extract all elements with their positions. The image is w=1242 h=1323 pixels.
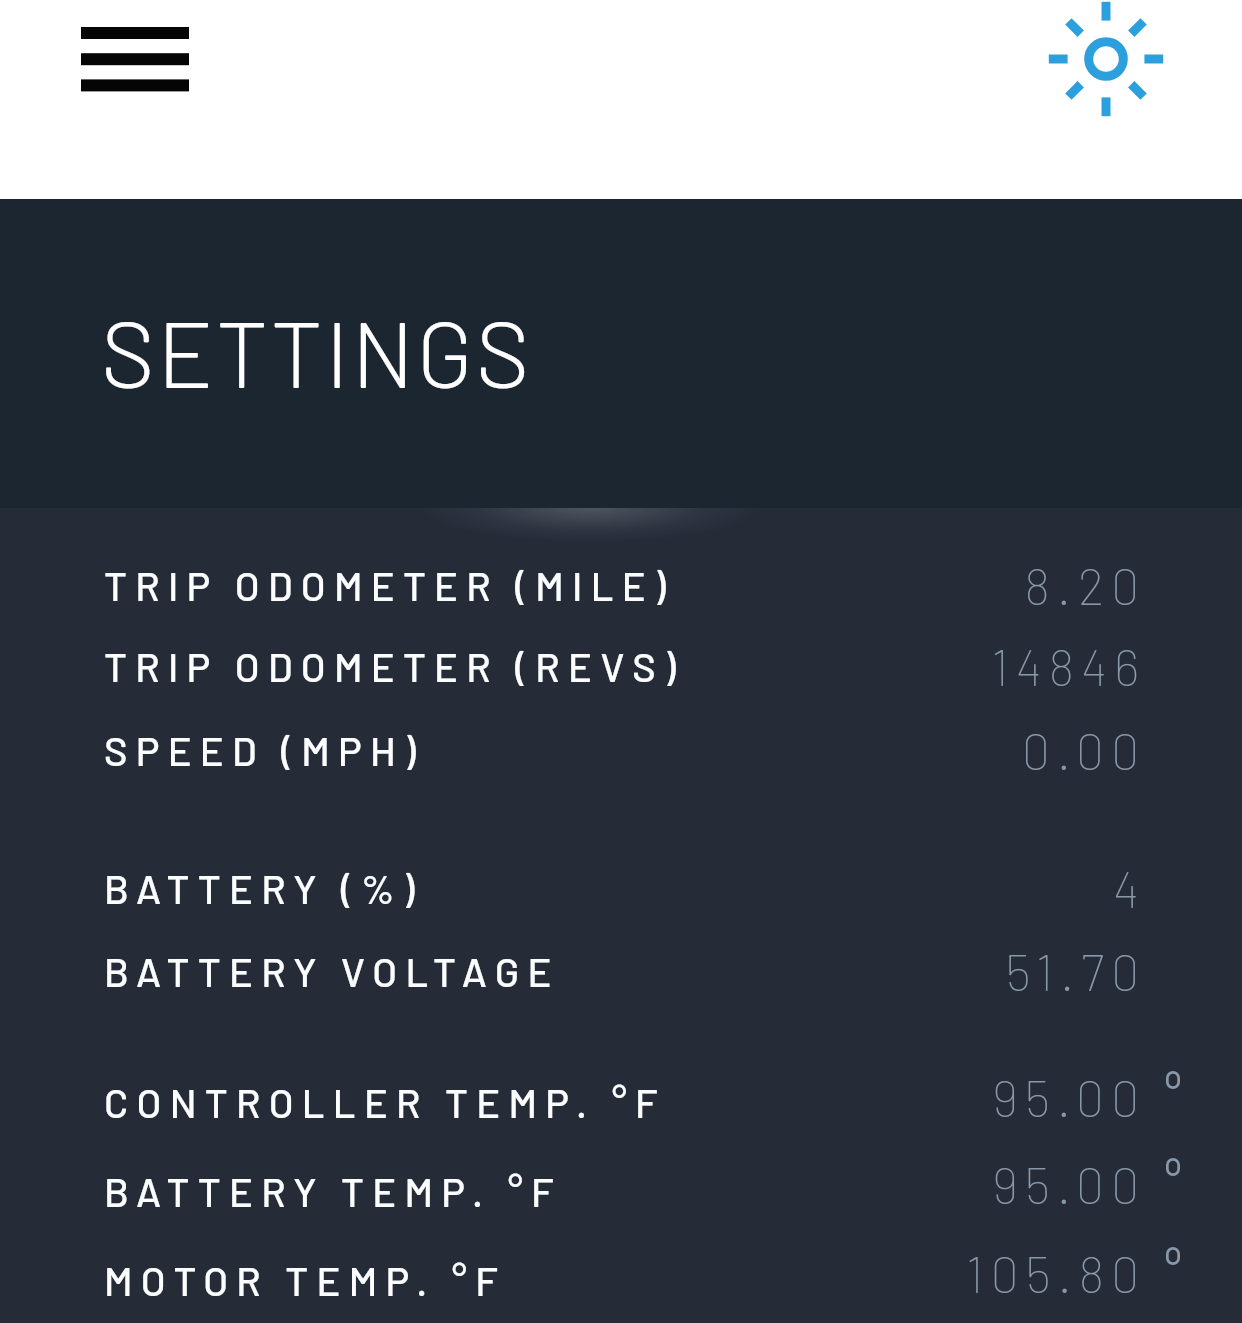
staticText: 0.00 [1021, 720, 1146, 780]
staticText: 95.00 [992, 1154, 1146, 1214]
staticText: CONTROLLER TEMP. °F [104, 1078, 666, 1126]
button[interactable]: TRIP ODOMETER (MILE) [0, 535, 1242, 617]
button[interactable]: CONTROLLER TEMP. °F [0, 1052, 1242, 1134]
staticText: 95.00 [992, 1067, 1146, 1127]
staticText: 4 [1113, 858, 1146, 918]
staticText: BATTERY VOLTAGE [104, 947, 560, 995]
staticText: 51.70 [1005, 941, 1146, 1001]
button[interactable]: BATTERY TEMP. °F [0, 1141, 1242, 1223]
staticText: SETTINGS [101, 296, 532, 407]
staticText: MOTOR TEMP. °F [104, 1256, 507, 1304]
staticText: BATTERY (%) [104, 864, 423, 912]
button[interactable]: MOTOR TEMP. °F [0, 1230, 1242, 1312]
staticText: 14846 [991, 636, 1146, 696]
button[interactable]: BATTERY VOLTAGE [0, 921, 1242, 1003]
staticText: BATTERY TEMP. °F [104, 1167, 562, 1215]
button[interactable]: SPEED (MPH) [0, 700, 1242, 782]
button[interactable]: BATTERY (%) [0, 838, 1242, 920]
staticText: 8.20 [1024, 555, 1146, 615]
button[interactable]: TRIP ODOMETER (REVS) [0, 616, 1242, 698]
staticText: TRIP ODOMETER (REVS) [104, 642, 684, 690]
button[interactable]: Brightness [1048, 1, 1164, 117]
staticText: 105.80 [966, 1243, 1146, 1303]
button[interactable]: Menu [42, 0, 228, 118]
staticText: TRIP ODOMETER (MILE) [104, 561, 674, 609]
staticText: SPEED (MPH) [104, 726, 424, 774]
